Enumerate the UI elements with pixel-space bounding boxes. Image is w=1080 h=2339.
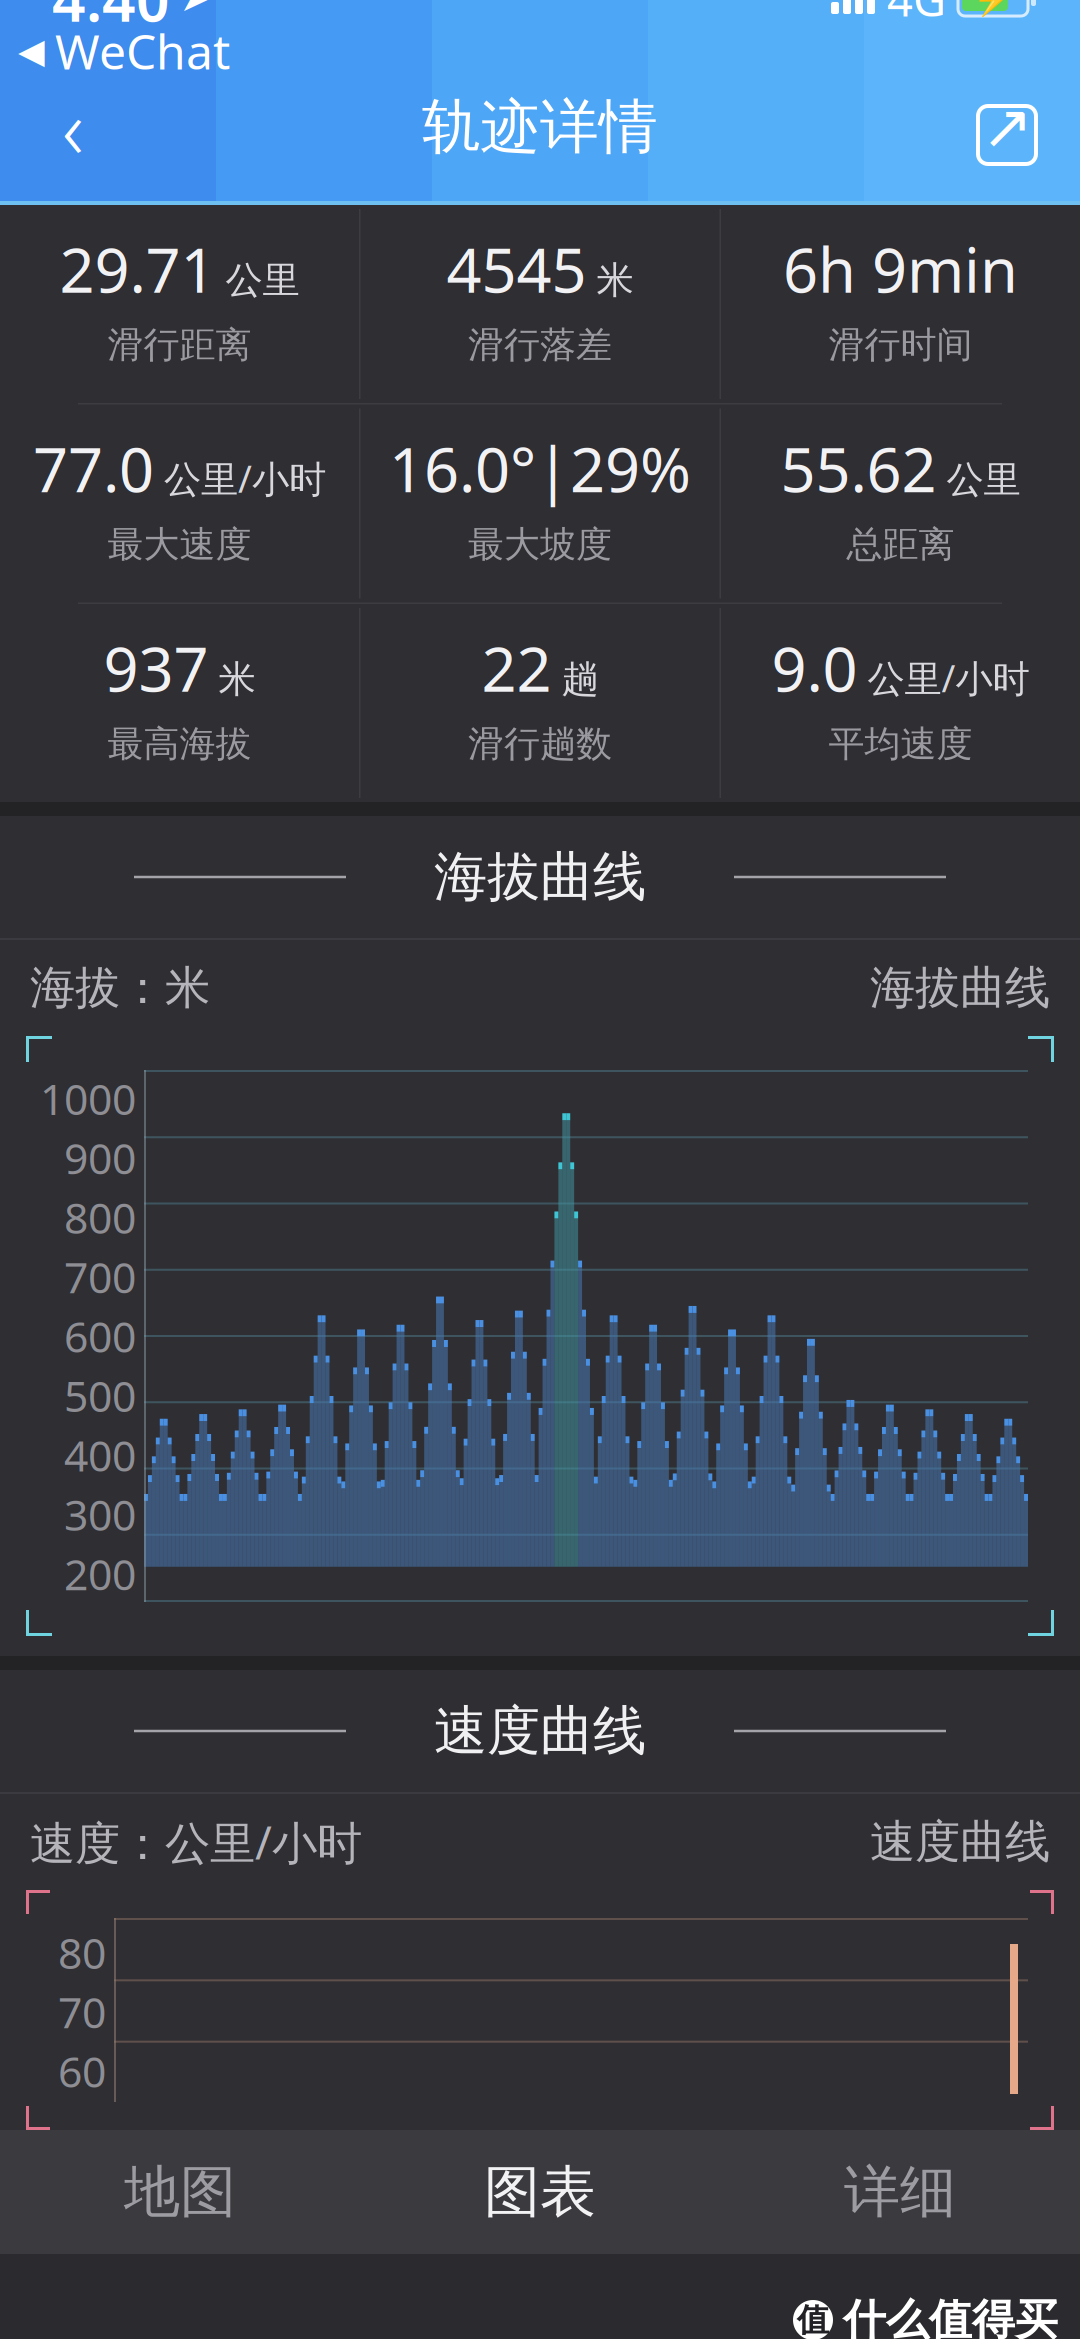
staticText: 公里/小时 [867,653,1029,702]
staticText: 300 [64,1486,136,1543]
staticText: 米 [218,656,255,702]
staticText: 最大速度 [107,522,251,567]
staticText: 700 [64,1248,136,1305]
staticText: ⚡ [973,0,1013,17]
button[interactable]: 图表 [360,2130,720,2254]
staticText: 滑行趟数 [468,722,612,766]
staticText: 800 [64,1189,136,1245]
staticText: 最大坡度 [468,522,612,567]
button[interactable]: Back [18,77,128,177]
staticText: 400 [64,1426,136,1483]
staticText: 937 [103,627,208,709]
staticText: 海拔：米 [30,960,210,1016]
staticText: 9.0 [771,627,857,709]
staticText: ↗ [981,92,1032,162]
staticText: 公里 [946,457,1020,503]
staticText: 滑行时间 [828,323,972,367]
staticText: 总距离 [846,522,954,567]
staticText: 22 [481,627,551,709]
staticText: 29.71 [59,228,215,310]
staticText: 值 [797,2300,829,2339]
staticText: 200 [64,1545,136,1602]
staticText: 滑行距离 [107,323,251,367]
button[interactable]: 详细 [720,2130,1080,2254]
staticText: 海拔曲线 [434,844,646,910]
staticText: 速度曲线 [434,1698,646,1764]
staticText: 详细 [844,2158,956,2226]
staticText: 速度曲线 [870,1814,1050,1870]
staticText: 地图 [124,2158,236,2226]
staticText: 900 [64,1129,136,1186]
button[interactable]: 地图 [0,2130,360,2254]
staticText: 什么值得买 [843,2294,1058,2339]
button[interactable]: ◀ [0,27,1080,75]
staticText: 80 [58,1924,106,1981]
staticText: 16.0°|29% [389,428,691,509]
staticText: 4:40 [52,0,170,38]
staticText: 1000 [40,1070,136,1127]
button[interactable]: Share [952,77,1062,177]
staticText: 轨迹详情 [422,91,658,163]
staticText: 最高海拔 [107,722,251,766]
staticText: 米 [596,257,633,303]
staticText: ‹ [62,72,84,182]
staticText: 600 [64,1308,136,1364]
staticText: ➤ [180,0,209,19]
staticText: 海拔曲线 [870,960,1050,1016]
staticText: ◀ [18,31,45,71]
staticText: 公里 [225,257,299,303]
staticText: 70 [58,1983,106,2040]
staticText: 500 [64,1367,136,1424]
staticText: 公里/小时 [164,453,326,503]
staticText: 4545 [446,228,586,310]
staticText: 77.0 [33,428,154,509]
staticText: 平均速度 [828,722,972,766]
staticText: WeChat [55,19,230,83]
staticText: 6h 9min [783,228,1018,310]
staticText: 55.62 [780,428,936,509]
staticText: 60 [58,2043,106,2099]
staticText: 4G [887,0,946,29]
staticText: 速度：公里/小时 [30,1812,362,1872]
staticText: 趟 [561,656,598,702]
staticText: 图表 [484,2158,596,2226]
staticText: 滑行落差 [468,323,612,367]
